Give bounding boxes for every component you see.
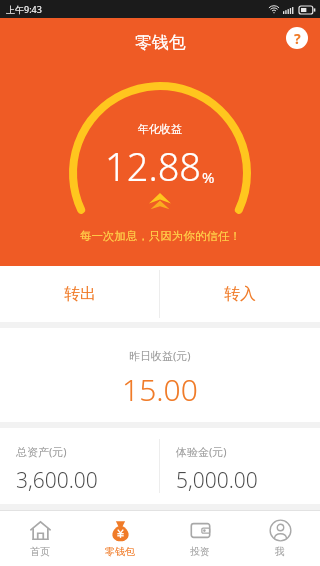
staticText: 15.00 [122, 369, 198, 410]
staticText: 首页 [30, 545, 50, 558]
button[interactable]: Help [286, 27, 308, 49]
staticText: 5,000.00 [176, 466, 258, 495]
button[interactable]: 转出 [0, 266, 159, 322]
staticText: 转入 [224, 284, 256, 304]
button[interactable]: 我 [240, 511, 320, 566]
staticText: 零钱包 [135, 32, 186, 53]
staticText: ? [294, 29, 301, 48]
button[interactable]: 总资产(元) [0, 428, 159, 504]
button[interactable]: 体验金(元) [160, 428, 320, 504]
staticText: % [202, 167, 215, 187]
staticText: 我 [275, 545, 285, 558]
staticText: 3,600.00 [16, 466, 98, 495]
staticText: 投资 [190, 545, 210, 558]
button[interactable]: 投资 [160, 511, 240, 566]
button[interactable]: 零钱包 [80, 511, 160, 566]
staticText: 年化收益 [138, 122, 182, 136]
staticText: 总资产(元) [16, 444, 67, 459]
button[interactable]: 首页 [0, 511, 80, 566]
staticText: 12.88 [105, 140, 202, 192]
staticText: 每一次加息，只因为你的信任！ [80, 229, 241, 243]
staticText: 转出 [64, 284, 96, 304]
staticText: 体验金(元) [176, 444, 227, 459]
staticText: 昨日收益(元) [129, 348, 191, 363]
staticText: 零钱包 [105, 545, 135, 558]
button[interactable]: 转入 [160, 266, 320, 322]
staticText: 上午9:43 [6, 3, 42, 15]
